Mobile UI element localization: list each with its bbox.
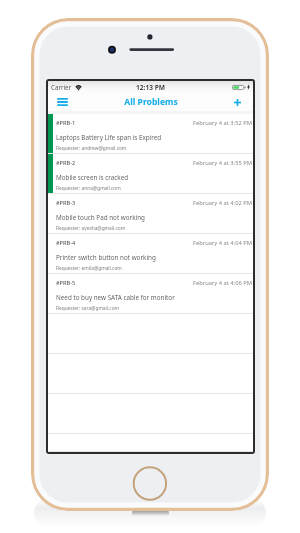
staticText: Requester: ayesha@gmail.com — [56, 225, 126, 232]
button[interactable]: #PRB-2 — [48, 154, 253, 194]
staticText: February 4 at 3:55 PM — [193, 159, 252, 167]
staticText: Requester: anna@gmail.com — [56, 185, 121, 192]
button[interactable]: Add new problem — [230, 93, 244, 111]
staticText: #PRB-1 — [56, 119, 76, 127]
button[interactable]: #PRB-5 — [48, 274, 253, 314]
staticText: #PRB-5 — [56, 279, 76, 287]
staticText: Laptops Battery Life span is Expired — [56, 133, 162, 142]
staticText: February 4 at 4:02 PM — [193, 199, 252, 207]
button[interactable]: #PRB-4 — [48, 234, 253, 274]
staticText: #PRB-3 — [56, 199, 76, 207]
staticText: Requester: andrew@gmail.com — [56, 145, 127, 152]
staticText: #PRB-2 — [56, 159, 76, 167]
staticText: 12:13 PM — [136, 83, 165, 92]
staticText: Need to buy new SATA cable for monitor — [56, 293, 175, 302]
staticText: Requester: sara@gmail.com — [56, 305, 120, 312]
staticText: February 4 at 3:52 PM — [193, 119, 252, 127]
staticText: February 4 at 4:06 PM — [193, 279, 252, 287]
staticText: Mobile screen is cracked — [56, 173, 129, 182]
staticText: Carrier — [51, 83, 72, 91]
staticText: Mobile touch Pad not working — [56, 213, 145, 222]
staticText: Printer switch button not working — [56, 253, 156, 262]
staticText: All Problems — [124, 96, 178, 108]
button[interactable]: Open navigation menu — [55, 93, 69, 111]
staticText: Requester: emila@gmail.com — [56, 265, 122, 272]
button[interactable]: #PRB-1 — [48, 114, 253, 154]
staticText: February 4 at 4:04 PM — [193, 239, 252, 247]
staticText: #PRB-4 — [56, 239, 76, 247]
button[interactable]: #PRB-3 — [48, 194, 253, 234]
